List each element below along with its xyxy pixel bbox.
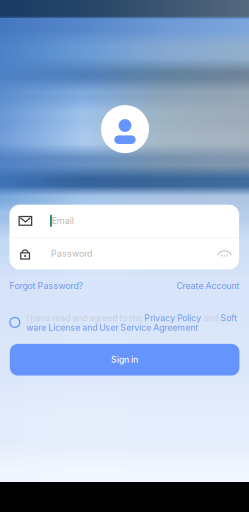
staticText: Email: [52, 216, 74, 226]
staticText: Forgot Password?: [10, 281, 83, 291]
staticText: and: [201, 313, 220, 323]
staticText: I have read and agreed to the: [26, 313, 144, 323]
button[interactable]: Privacy Policy: [144, 313, 201, 323]
button[interactable]: Show password: [213, 243, 235, 265]
button[interactable]: Sign in: [10, 344, 239, 375]
staticText: Privacy Policy: [144, 313, 201, 323]
staticText: Sign in: [111, 354, 138, 365]
button[interactable]: Forgot Password?: [10, 281, 83, 291]
staticText: Create Account: [176, 281, 239, 291]
button[interactable]: Create Account: [176, 281, 239, 291]
staticText: Soft: [220, 313, 237, 323]
staticText: Password: [51, 248, 92, 259]
button[interactable]: Agree to terms: [6, 313, 24, 331]
staticText: ware License and User Service Agreement: [26, 322, 198, 333]
